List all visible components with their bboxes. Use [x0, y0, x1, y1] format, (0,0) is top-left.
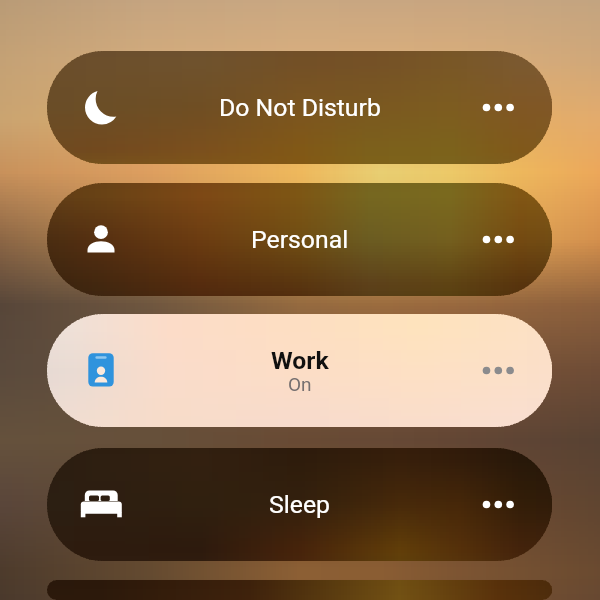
button[interactable]	[47, 580, 552, 600]
button[interactable]: Personal	[47, 183, 552, 296]
staticText: On	[288, 373, 312, 395]
staticText: Do Not Disturb	[219, 93, 381, 122]
staticText: Sleep	[269, 490, 330, 519]
button[interactable]: Work	[47, 314, 552, 427]
button[interactable]: Do Not Disturb	[47, 51, 552, 164]
staticText: Work	[271, 346, 329, 375]
button[interactable]: Sleep	[47, 448, 552, 561]
staticText: Personal	[251, 225, 349, 254]
